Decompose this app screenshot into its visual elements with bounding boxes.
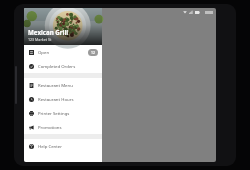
button[interactable]: Restaurant Hours [24, 92, 102, 106]
button[interactable]: Restaurant Menu [24, 78, 102, 92]
staticText: Help Center [38, 143, 63, 149]
staticText: Printer Settings [38, 110, 70, 116]
button[interactable]: Printer Settings [24, 106, 102, 120]
button[interactable]: Open Orders [24, 45, 102, 59]
staticText: Mexican Grill [28, 28, 69, 36]
staticText: Restaurant Menu [38, 82, 73, 88]
button[interactable]: Help Center [24, 139, 102, 153]
button[interactable]: Mexican Grill [24, 8, 102, 45]
other: Promotions [29, 125, 34, 130]
button[interactable]: Promotions [24, 120, 102, 134]
other: Restaurant Menu [29, 83, 34, 88]
staticText: Promotions [38, 124, 62, 130]
other: Completed Orders [29, 64, 34, 69]
staticText: Open Orders [38, 49, 63, 55]
other: Restaurant Hours [29, 97, 34, 102]
staticText: 12 [91, 50, 95, 55]
staticText: Restaurant Hours [38, 96, 74, 102]
button[interactable]: Completed Orders [24, 59, 102, 73]
other: Open Orders [29, 50, 34, 55]
staticText: 123 Market St [28, 37, 52, 42]
other: Printer Settings [29, 111, 34, 116]
other: Help Center [29, 144, 34, 149]
staticText: Completed Orders [38, 63, 76, 69]
